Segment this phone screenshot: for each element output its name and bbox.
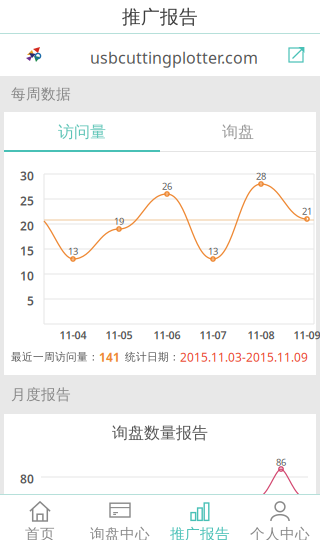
staticText: 11-09 [293, 328, 320, 342]
staticText: 11-04 [59, 328, 86, 342]
staticText: 25 [20, 193, 34, 209]
staticText: 30 [20, 168, 34, 184]
staticText: 访问量 [58, 122, 106, 142]
staticText: 询盘 [222, 122, 254, 142]
staticText: 询盘中心 [90, 525, 150, 540]
staticText: 月度报告 [11, 385, 71, 403]
staticText: 19 [114, 215, 124, 227]
staticText: 13 [208, 245, 218, 257]
staticText: 141 [99, 349, 120, 365]
button[interactable]: Open in browser [281, 40, 311, 70]
staticText: 推广报告 [122, 5, 198, 28]
staticText: 11-06 [153, 328, 180, 342]
staticText: 10 [20, 268, 34, 284]
staticText: 个人中心 [250, 525, 310, 540]
staticText: 15 [20, 243, 34, 259]
button[interactable]: 首页 [0, 494, 80, 540]
staticText: 每周数据 [11, 85, 71, 103]
button[interactable]: 推广报告 [160, 494, 240, 540]
staticText: 26 [162, 180, 172, 192]
button[interactable]: 个人中心 [240, 494, 320, 540]
staticText: 21 [302, 205, 312, 217]
staticText: 11-05 [105, 328, 132, 342]
staticText: 首页 [25, 525, 55, 540]
button[interactable]: 询盘中心 [80, 494, 160, 540]
staticText: 80 [20, 471, 34, 487]
button[interactable]: 询盘 [160, 112, 316, 152]
staticText: 20 [20, 218, 34, 234]
staticText: 最近一周访问量： [11, 350, 99, 363]
button[interactable]: 访问量 [4, 112, 160, 152]
staticText: 86 [276, 456, 286, 468]
staticText: 11-08 [247, 328, 274, 342]
staticText: 28 [256, 170, 266, 182]
staticText: 11-07 [199, 328, 226, 342]
staticText: 推广报告 [170, 525, 230, 540]
staticText: 统计日期： [125, 350, 180, 363]
staticText: 2015.11.03-2015.11.09 [180, 349, 308, 365]
staticText: 5 [27, 293, 34, 309]
staticText: 询盘数量报告 [112, 423, 208, 443]
staticText: 13 [68, 245, 78, 257]
staticText: usbcuttingplotter.com [90, 47, 258, 68]
